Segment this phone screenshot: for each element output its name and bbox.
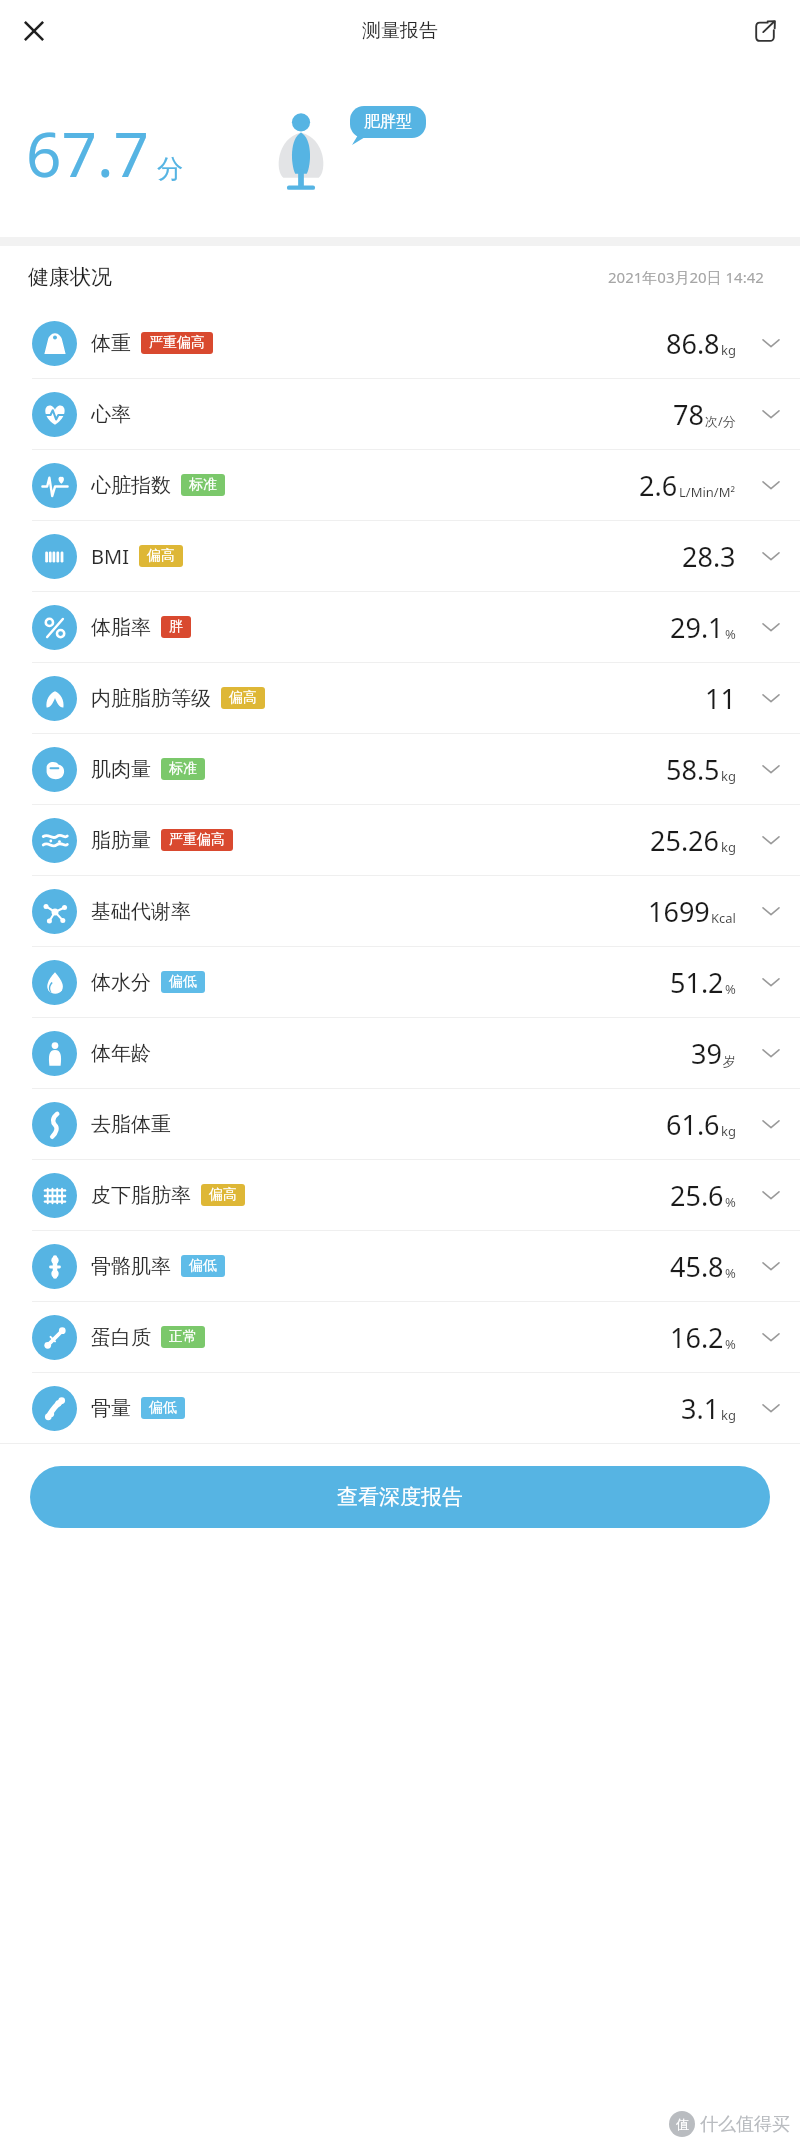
staticText: 标准 [189, 476, 217, 494]
staticText: 内脏脂肪等级 [91, 686, 211, 711]
button[interactable]: Expand [754, 823, 788, 857]
staticText: Kcal [711, 909, 736, 927]
button[interactable]: 蛋白质 [0, 1302, 800, 1372]
staticText: 25.6 [670, 1177, 724, 1214]
button[interactable]: 去脂体重 [0, 1089, 800, 1159]
button[interactable]: 心率 [0, 379, 800, 449]
staticText: 67.7 [26, 111, 150, 195]
staticText: 骨量 [91, 1396, 131, 1421]
staticText: 次/分 [705, 412, 736, 430]
staticText: 偏低 [169, 973, 197, 991]
staticText: 骨骼肌率 [91, 1254, 171, 1279]
staticText: 偏高 [209, 1186, 237, 1204]
staticText: 1699 [648, 893, 710, 930]
staticText: kg [721, 838, 736, 856]
button[interactable]: Expand [754, 894, 788, 928]
staticText: 正常 [169, 1328, 197, 1346]
staticText: 心脏指数 [91, 473, 171, 498]
staticText: BMI [91, 543, 129, 570]
button[interactable]: 体年龄 [0, 1018, 800, 1088]
button[interactable]: BMI [0, 521, 800, 591]
staticText: 39 [691, 1035, 722, 1072]
button[interactable]: Expand [754, 965, 788, 999]
staticText: kg [721, 341, 736, 359]
staticText: 25.26 [650, 822, 720, 859]
staticText: 脂肪量 [91, 828, 151, 853]
button[interactable]: Expand [754, 752, 788, 786]
staticText: 45.8 [670, 1248, 724, 1285]
button[interactable]: Expand [754, 1107, 788, 1141]
staticText: 心率 [91, 402, 131, 427]
button[interactable]: Expand [754, 1391, 788, 1425]
staticText: 健康状况 [28, 264, 112, 290]
staticText: 体重 [91, 331, 131, 356]
staticText: 86.8 [666, 325, 720, 362]
staticText: 岁 [723, 1053, 736, 1069]
button[interactable]: 体重 [0, 308, 800, 378]
button[interactable]: 体脂率 [0, 592, 800, 662]
button[interactable]: 内脏脂肪等级 [0, 663, 800, 733]
staticText: 体年龄 [91, 1041, 151, 1066]
staticText: 肥胖型 [364, 112, 412, 132]
button[interactable]: Share [742, 8, 788, 54]
staticText: 58.5 [666, 751, 720, 788]
staticText: 严重偏高 [149, 334, 205, 352]
staticText: 皮下脂肪率 [91, 1183, 191, 1208]
button[interactable]: 皮下脂肪率 [0, 1160, 800, 1230]
button[interactable]: Expand [754, 539, 788, 573]
staticText: 去脂体重 [91, 1112, 171, 1137]
button[interactable]: Expand [754, 397, 788, 431]
staticText: 基础代谢率 [91, 899, 191, 924]
staticText: 2.6 [639, 467, 678, 504]
staticText: % [725, 980, 736, 998]
button[interactable]: 查看深度报告 [30, 1466, 770, 1528]
staticText: 51.2 [670, 964, 724, 1001]
staticText: 查看深度报告 [337, 1484, 463, 1510]
button[interactable]: 体水分 [0, 947, 800, 1017]
staticText: L/Min/M² [679, 483, 736, 501]
staticText: 偏高 [147, 547, 175, 565]
staticText: kg [721, 1406, 736, 1424]
button[interactable]: Expand [754, 326, 788, 360]
staticText: 肌肉量 [91, 757, 151, 782]
staticText: 61.6 [666, 1106, 720, 1143]
button[interactable]: Expand [754, 681, 788, 715]
button[interactable]: 骨量 [0, 1373, 800, 1443]
button[interactable]: Expand [754, 1249, 788, 1283]
staticText: % [725, 1335, 736, 1353]
button[interactable]: 骨骼肌率 [0, 1231, 800, 1301]
staticText: 3.1 [681, 1390, 720, 1427]
staticText: 29.1 [670, 609, 724, 646]
staticText: 体脂率 [91, 615, 151, 640]
staticText: 胖 [169, 618, 183, 636]
button[interactable]: 肌肉量 [0, 734, 800, 804]
staticText: 分 [157, 153, 183, 186]
staticText: 体水分 [91, 970, 151, 995]
staticText: % [725, 625, 736, 643]
staticText: % [725, 1193, 736, 1211]
button[interactable]: Expand [754, 1036, 788, 1070]
button[interactable]: Expand [754, 610, 788, 644]
staticText: 标准 [169, 760, 197, 778]
staticText: 11 [705, 680, 736, 717]
button[interactable]: 脂肪量 [0, 805, 800, 875]
button[interactable]: Expand [754, 1320, 788, 1354]
staticText: 蛋白质 [91, 1325, 151, 1350]
button[interactable]: Expand [754, 1178, 788, 1212]
button[interactable]: Close [10, 7, 58, 55]
staticText: 严重偏高 [169, 831, 225, 849]
staticText: kg [721, 1122, 736, 1140]
staticText: 78 [673, 396, 704, 433]
staticText: 偏低 [149, 1399, 177, 1417]
staticText: 2021年03月20日 14:42 [608, 267, 764, 287]
button[interactable]: Expand [754, 468, 788, 502]
staticText: 什么值得买 [700, 2113, 790, 2136]
staticText: 28.3 [682, 538, 736, 575]
staticText: 偏高 [229, 689, 257, 707]
staticText: 值 [676, 2116, 689, 2132]
button[interactable]: 心脏指数 [0, 450, 800, 520]
button[interactable]: 基础代谢率 [0, 876, 800, 946]
staticText: 测量报告 [362, 19, 438, 43]
staticText: % [725, 1264, 736, 1282]
staticText: 偏低 [189, 1257, 217, 1275]
